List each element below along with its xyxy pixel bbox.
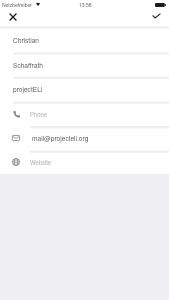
button[interactable]: Cancel bbox=[5, 9, 21, 25]
button[interactable]: Done bbox=[148, 8, 164, 24]
button[interactable]: Christian bbox=[0, 27, 169, 53]
staticText: Phone bbox=[30, 110, 48, 118]
button[interactable]: Website bbox=[0, 151, 169, 174]
staticText: Schaffrath bbox=[13, 60, 43, 69]
button[interactable]: projectELi bbox=[0, 77, 169, 102]
staticText: projectELi bbox=[13, 84, 43, 93]
staticText: Christian bbox=[13, 35, 39, 44]
staticText: 13:58 bbox=[79, 1, 92, 8]
staticText: Website bbox=[30, 158, 52, 166]
staticText: Netzbetreiber bbox=[2, 1, 32, 8]
staticText: mail@projecteli.org bbox=[32, 133, 89, 142]
button[interactable]: mail@projecteli.org bbox=[0, 126, 169, 151]
button[interactable]: Phone bbox=[0, 102, 169, 127]
button[interactable]: Schaffrath bbox=[0, 53, 169, 77]
